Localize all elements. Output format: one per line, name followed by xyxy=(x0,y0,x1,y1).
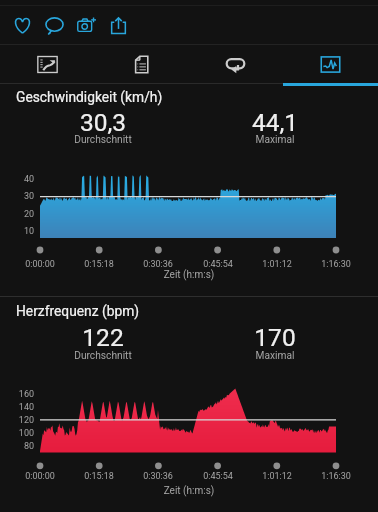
staticText: 0:45:54 xyxy=(188,259,248,270)
staticText: 0:30:36 xyxy=(128,471,188,482)
staticText: 0:15:18 xyxy=(69,471,129,482)
staticText: 1:16:30 xyxy=(306,259,366,270)
staticText: 44,1 xyxy=(189,108,361,137)
staticText: 40 xyxy=(0,174,34,185)
button[interactable]: Add photo xyxy=(70,6,102,44)
staticText: 20 xyxy=(0,209,34,220)
staticText: 170 xyxy=(189,323,361,352)
staticText: Herzfrequenz (bpm) xyxy=(16,303,140,319)
button[interactable]: Comment xyxy=(38,6,70,44)
staticText: 80 xyxy=(0,441,34,452)
staticText: Durchschnitt xyxy=(17,350,189,362)
button[interactable]: Charts xyxy=(283,45,378,83)
staticText: 140 xyxy=(0,402,34,413)
staticText: 30,3 xyxy=(17,108,189,137)
staticText: 0:00:00 xyxy=(10,471,70,482)
staticText: 0:45:54 xyxy=(188,471,248,482)
staticText: 120 xyxy=(0,415,34,426)
staticText: Zeit (h:m:s) xyxy=(0,485,378,497)
staticText: Durchschnitt xyxy=(17,134,189,146)
staticText: 1:16:30 xyxy=(306,471,366,482)
staticText: 100 xyxy=(0,428,34,439)
staticText: 10 xyxy=(0,226,34,237)
button[interactable]: Map route xyxy=(0,45,94,83)
staticText: 1:01:12 xyxy=(247,259,307,270)
staticText: 1:01:12 xyxy=(247,471,307,482)
staticText: 0:15:18 xyxy=(69,259,129,270)
staticText: Zeit (h:m:s) xyxy=(0,269,378,281)
button[interactable]: Details xyxy=(94,45,188,83)
button[interactable]: Share xyxy=(102,6,134,44)
staticText: 160 xyxy=(0,389,34,400)
staticText: Maximal xyxy=(189,134,361,146)
staticText: 0:00:00 xyxy=(10,259,70,270)
staticText: 122 xyxy=(17,323,189,352)
staticText: Maximal xyxy=(189,350,361,362)
button[interactable]: Laps xyxy=(188,45,283,83)
button[interactable]: Like xyxy=(6,6,38,44)
staticText: 30 xyxy=(0,191,34,202)
staticText: Geschwindigkeit (km/h) xyxy=(16,89,163,105)
staticText: 0:30:36 xyxy=(128,259,188,270)
